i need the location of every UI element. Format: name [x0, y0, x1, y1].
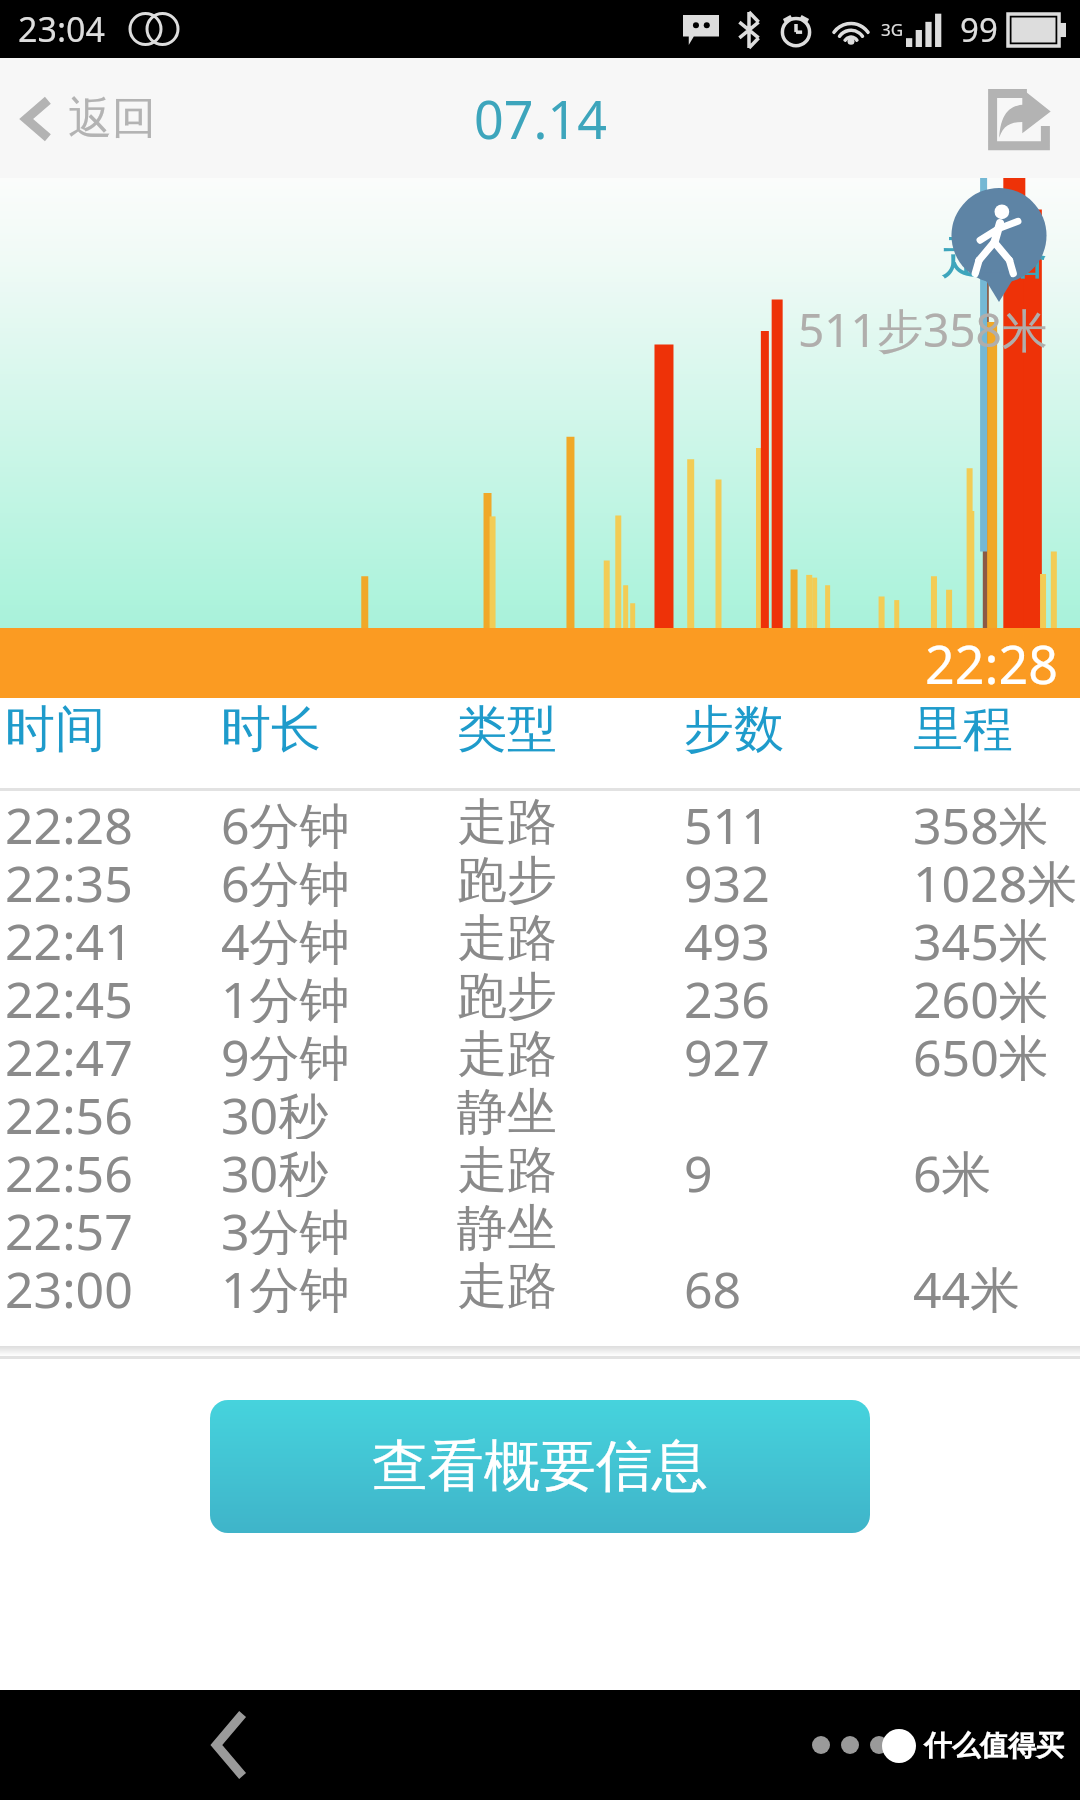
staticText: 22:41	[5, 907, 133, 965]
staticText: 走路	[940, 220, 1048, 288]
staticText: 22:47	[5, 1023, 133, 1081]
staticText: 30秒	[221, 1081, 329, 1139]
staticText: 跑步	[457, 849, 557, 907]
staticText: 9分钟	[221, 1023, 350, 1081]
button[interactable]: 22:56	[0, 1081, 1080, 1139]
button[interactable]: 22:41	[0, 907, 1080, 965]
staticText: 3分钟	[221, 1197, 350, 1255]
staticText: 345米	[913, 907, 1049, 965]
staticText: 68	[684, 1255, 742, 1313]
staticText: 走路	[457, 1139, 557, 1197]
staticText: 511步358米	[798, 298, 1048, 361]
staticText: 走路	[457, 1255, 557, 1313]
staticText: 4分钟	[221, 907, 350, 965]
staticText: 3G	[881, 18, 904, 41]
staticText: 1分钟	[221, 1255, 350, 1313]
staticText: 358米	[913, 791, 1049, 849]
button[interactable]: Share	[976, 75, 1062, 161]
button[interactable]: 查看概要信息	[210, 1400, 870, 1533]
staticText: 类型	[457, 698, 557, 761]
staticText: 跑步	[457, 965, 557, 1023]
staticText: 什么值得买	[924, 1728, 1064, 1763]
staticText: 22:56	[5, 1139, 133, 1197]
staticText: 走路	[457, 907, 557, 965]
staticText: 1分钟	[221, 965, 350, 1023]
button[interactable]: 22:45	[0, 965, 1080, 1023]
staticText: 927	[684, 1023, 770, 1081]
staticText: 22:56	[5, 1081, 133, 1139]
staticText: 1028米	[913, 849, 1078, 907]
staticText: 260米	[913, 965, 1049, 1023]
staticText: 650米	[913, 1023, 1049, 1081]
staticText: 时间	[5, 698, 105, 761]
staticText: 22:28	[925, 628, 1058, 698]
button[interactable]: Back	[175, 1690, 285, 1800]
button[interactable]: 22:47	[0, 1023, 1080, 1081]
button[interactable]: More options	[795, 1700, 905, 1790]
button[interactable]: 23:00	[0, 1255, 1080, 1313]
staticText: 22:57	[5, 1197, 133, 1255]
staticText: 走路	[457, 791, 557, 849]
staticText: 6米	[913, 1139, 992, 1197]
button[interactable]: 22:35	[0, 849, 1080, 907]
staticText: 静坐	[457, 1081, 557, 1139]
staticText: 时长	[221, 698, 321, 761]
staticText: 99	[960, 7, 998, 52]
button[interactable]: 22:28	[0, 791, 1080, 849]
staticText: 932	[684, 849, 770, 907]
staticText: 6分钟	[221, 791, 350, 849]
button[interactable]: 返回	[0, 77, 180, 160]
staticText: 511	[684, 791, 770, 849]
staticText: 23:00	[5, 1255, 133, 1313]
staticText: 22:35	[5, 849, 133, 907]
staticText: 22:45	[5, 965, 133, 1023]
staticText: 493	[684, 907, 770, 965]
staticText: 里程	[913, 698, 1013, 761]
staticText: 22:28	[5, 791, 133, 849]
staticText: 9	[684, 1139, 713, 1197]
staticText: 236	[684, 965, 770, 1023]
staticText: 6分钟	[221, 849, 350, 907]
staticText: 44米	[913, 1255, 1021, 1313]
staticText: 23:04	[18, 6, 105, 52]
staticText: 30秒	[221, 1139, 329, 1197]
staticText: 步数	[684, 698, 784, 761]
staticText: 07.14	[474, 83, 607, 154]
button[interactable]: 22:56	[0, 1139, 1080, 1197]
staticText: 静坐	[457, 1197, 557, 1255]
staticText: 走路	[457, 1023, 557, 1081]
staticText: 查看概要信息	[372, 1431, 708, 1502]
button[interactable]: 22:57	[0, 1197, 1080, 1255]
staticText: 返回	[68, 91, 156, 146]
